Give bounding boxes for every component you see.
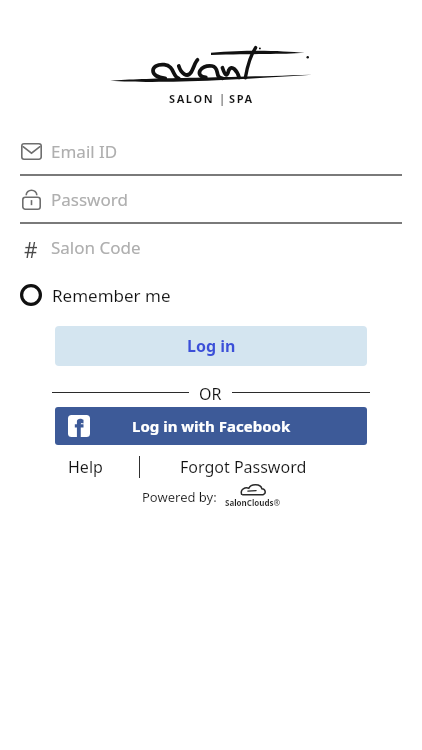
staticText: OR xyxy=(199,383,222,401)
staticText: Remember me xyxy=(52,284,171,307)
staticText: Powered by: xyxy=(142,488,217,506)
button[interactable]: Forgot Password xyxy=(174,453,313,481)
other: avant Salon Spa logo xyxy=(107,44,315,88)
staticText: | xyxy=(215,90,229,106)
other: Facebook xyxy=(68,415,90,437)
button[interactable]: Help xyxy=(62,453,109,481)
staticText: Password xyxy=(51,188,128,211)
button[interactable]: Email xyxy=(0,128,422,174)
button[interactable]: Remember me xyxy=(14,278,177,312)
staticText: Email ID xyxy=(51,140,118,163)
staticText: Log in with Facebook xyxy=(132,416,291,436)
staticText: SPA xyxy=(229,91,254,106)
staticText: Forgot Password xyxy=(180,456,307,478)
staticText: SalonClouds® xyxy=(225,497,281,508)
button[interactable]: Facebook xyxy=(55,407,367,445)
staticText: # xyxy=(24,236,38,258)
other: Email xyxy=(21,143,42,160)
button[interactable]: # xyxy=(0,224,422,270)
staticText: Log in xyxy=(187,335,236,357)
button[interactable]: Password xyxy=(0,176,422,222)
staticText: SALON xyxy=(169,91,215,106)
button[interactable]: Log in xyxy=(55,326,367,366)
staticText: Salon Code xyxy=(51,236,141,259)
staticText: Help xyxy=(68,456,103,478)
button[interactable]: SalonClouds xyxy=(225,483,281,511)
other: Password xyxy=(22,188,41,210)
